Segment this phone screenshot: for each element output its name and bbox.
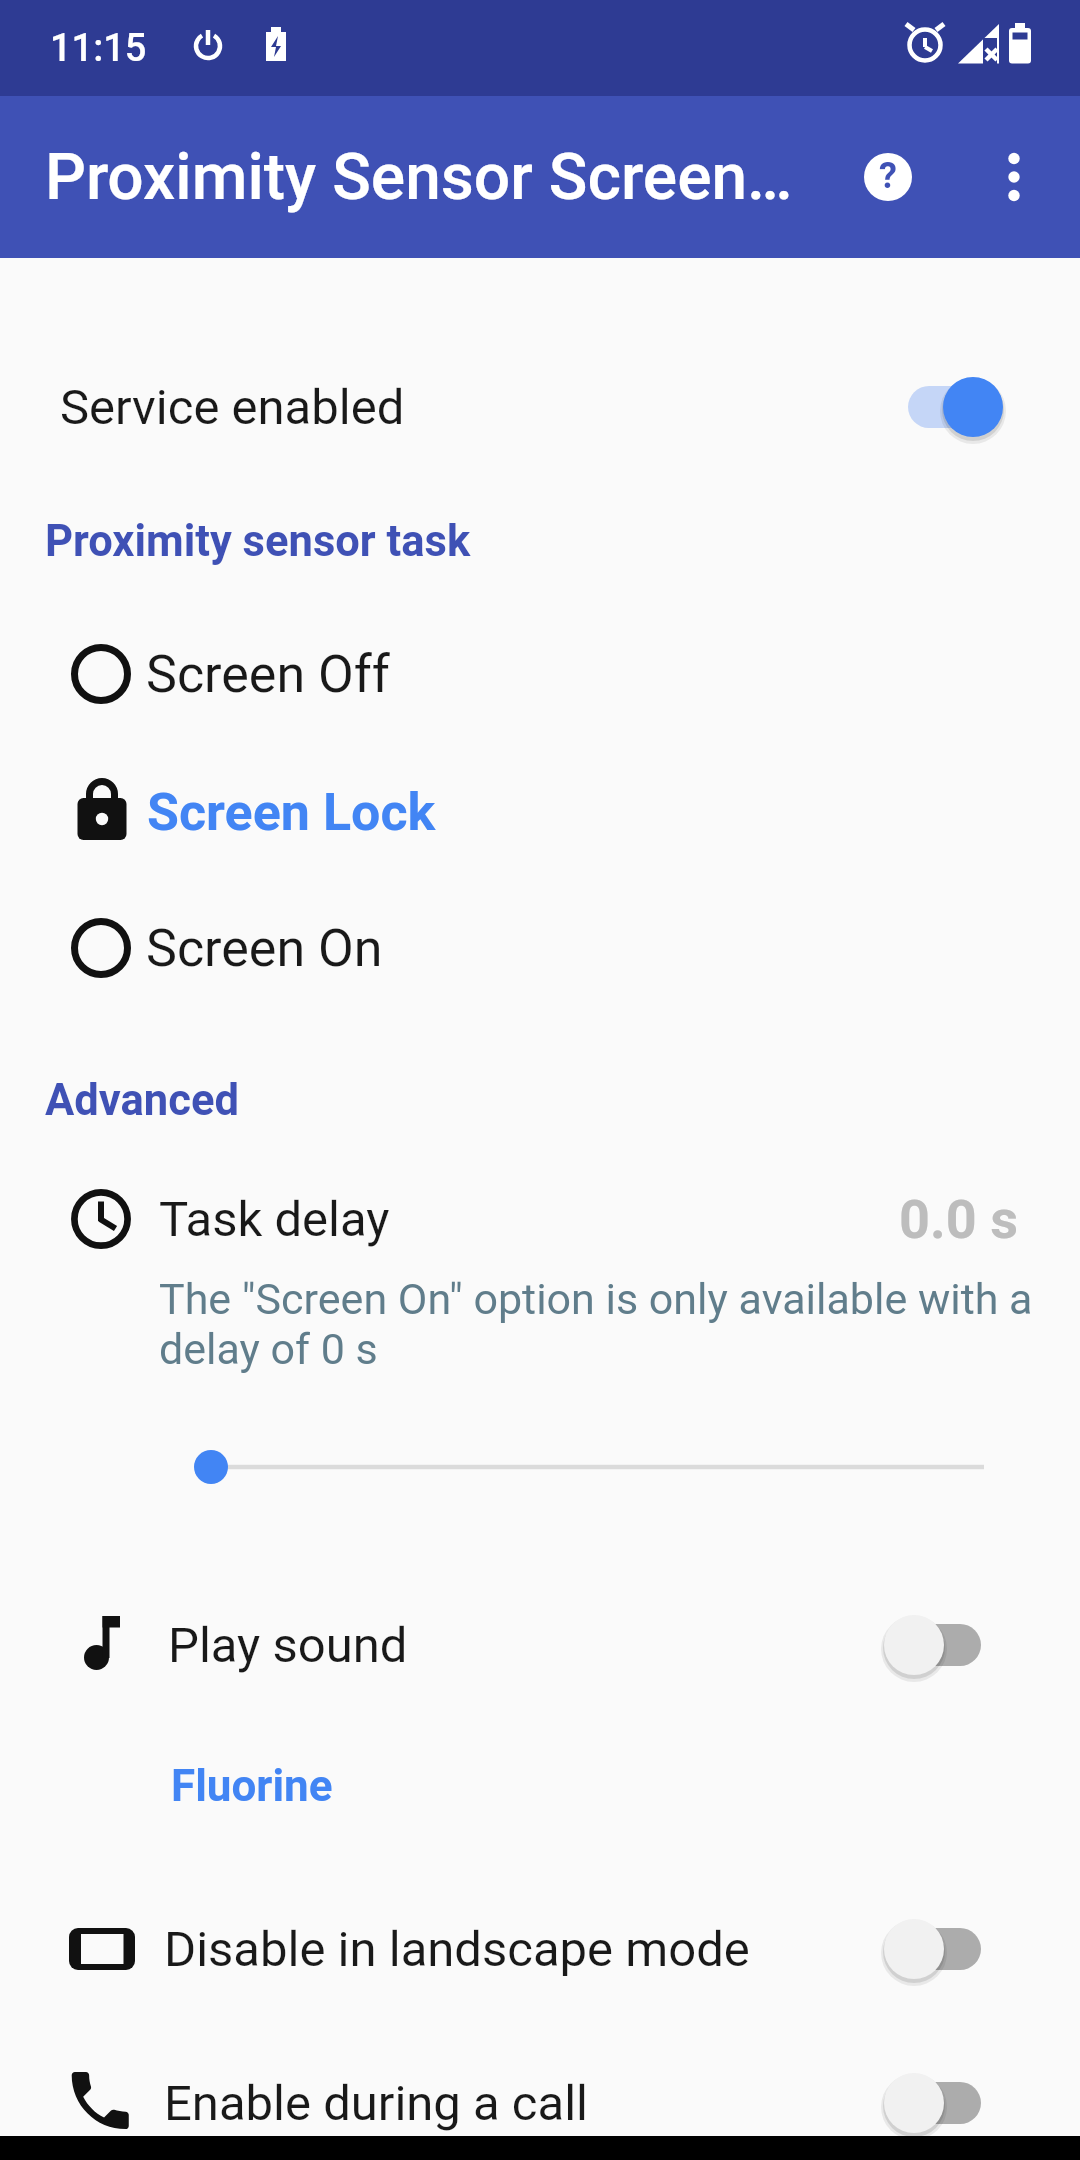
button[interactable]: Task delay <box>0 1159 1080 1279</box>
button[interactable]: ? <box>864 153 912 201</box>
staticText: Screen Off <box>146 644 390 705</box>
staticText: Service enabled <box>60 379 405 436</box>
button[interactable]: Proximity sensor task <box>0 491 1080 591</box>
staticText: Play sound <box>168 1617 408 1674</box>
button[interactable]: Enable during a call <box>0 2043 1080 2160</box>
staticText: Screen Lock <box>147 782 436 843</box>
staticText: Advanced <box>45 1075 239 1126</box>
button[interactable]: Advanced <box>0 1050 1080 1150</box>
staticText: Fluorine <box>171 1760 333 1812</box>
button[interactable]: Disable in landscape mode <box>0 1889 1080 2009</box>
button[interactable] <box>988 151 1040 203</box>
staticText: 11:15 <box>50 26 147 71</box>
button[interactable]: Screen Lock <box>0 752 1080 872</box>
button[interactable]: Play sound <box>0 1585 1080 1705</box>
staticText: Screen On <box>146 918 383 979</box>
staticText: Proximity sensor task <box>45 516 471 567</box>
staticText: Enable during a call <box>164 2075 588 2132</box>
staticText: 0.0 s <box>899 1188 1018 1251</box>
staticText: Proximity Sensor Screen… <box>45 140 793 215</box>
staticText: Disable in landscape mode <box>164 1921 750 1978</box>
staticText: ? <box>879 155 897 197</box>
staticText: Task delay <box>159 1191 390 1248</box>
button[interactable]: Service enabled <box>0 347 1080 467</box>
staticText: The "Screen On" option is only available… <box>159 1274 1033 1374</box>
button[interactable] <box>0 1407 1080 1527</box>
button[interactable]: Fluorine <box>0 1726 1080 1846</box>
button[interactable]: Screen On <box>0 888 1080 1008</box>
button[interactable]: Screen Off <box>0 614 1080 734</box>
